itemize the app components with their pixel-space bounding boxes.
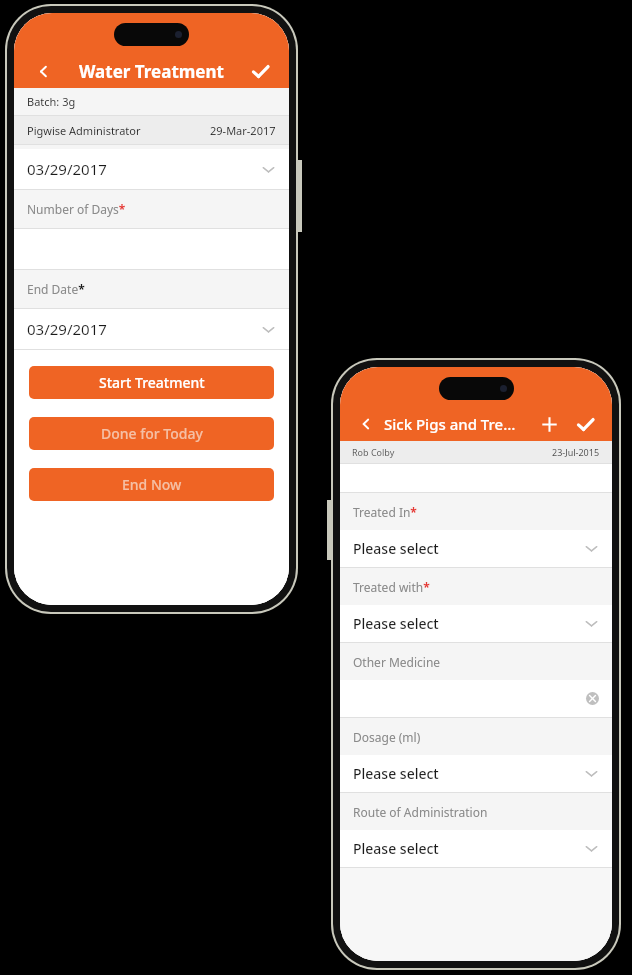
other: Save (576, 415, 595, 434)
staticText: End Now (122, 475, 182, 494)
staticText: Batch: 3g (27, 94, 76, 109)
staticText: Rob Colby (352, 446, 395, 458)
staticText: Sick Pigs and Tre… (384, 414, 536, 434)
staticText: Treated In* (353, 504, 417, 520)
staticText: Done for Today (101, 424, 203, 443)
button[interactable]: Route of Administration (340, 793, 612, 830)
staticText: Other Medicine (353, 654, 441, 670)
button[interactable]: Save (572, 411, 598, 437)
button[interactable]: End Now (29, 468, 274, 501)
staticText: Start Treatment (99, 373, 205, 392)
staticText: Route of Administration (353, 804, 488, 820)
other: Save (251, 62, 270, 81)
staticText: Please select (353, 764, 439, 783)
button[interactable]: Clear (340, 680, 612, 717)
staticText: 03/29/2017 (27, 159, 107, 179)
button[interactable]: Start Treatment (29, 366, 274, 399)
staticText: 29-Mar-2017 (210, 123, 276, 138)
staticText: 23-Jul-2015 (552, 446, 600, 458)
button[interactable]: Dosage (ml) (340, 718, 612, 755)
staticText: Number of Days* (27, 201, 126, 217)
staticText: Dosage (ml) (353, 729, 421, 745)
button[interactable]: Treated with* (340, 568, 612, 605)
staticText: End Date* (27, 281, 85, 297)
button[interactable]: Please select (340, 755, 612, 792)
button[interactable]: End Date* (14, 270, 289, 308)
button[interactable]: Done for Today (29, 417, 274, 450)
staticText: Pigwise Administrator (27, 123, 141, 138)
button[interactable]: Please select (340, 530, 612, 567)
staticText: 03/29/2017 (27, 319, 107, 339)
button[interactable]: Save (247, 58, 273, 84)
other: Add (540, 415, 559, 434)
staticText: Water Treatment (79, 60, 224, 83)
other: Back (359, 417, 373, 431)
staticText: Treated with* (353, 579, 430, 595)
button[interactable]: Other Medicine (340, 643, 612, 680)
button[interactable]: Please select (340, 830, 612, 867)
button[interactable]: Back (30, 58, 56, 84)
staticText: Please select (353, 614, 439, 633)
button[interactable]: Add (536, 411, 562, 437)
button[interactable]: 03/29/2017 (14, 309, 289, 349)
button[interactable]: Please select (340, 605, 612, 642)
button[interactable]: Number of Days* (14, 190, 289, 228)
other: Clear (586, 692, 599, 705)
staticText: Please select (353, 539, 439, 558)
button[interactable]: Back (354, 412, 378, 436)
other: Back (36, 64, 51, 79)
button[interactable]: Treated In* (340, 493, 612, 530)
staticText: Please select (353, 839, 439, 858)
button[interactable]: 03/29/2017 (14, 149, 289, 189)
